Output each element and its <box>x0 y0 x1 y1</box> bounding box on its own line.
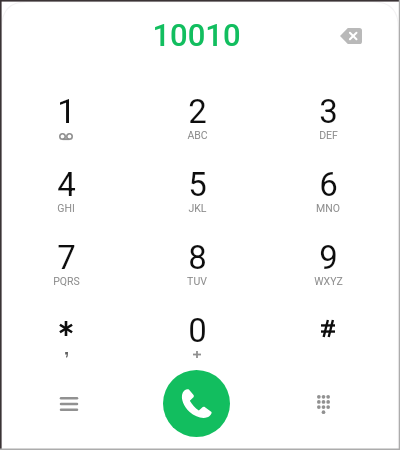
staticText: 7 <box>57 238 76 277</box>
staticText: 10010 <box>152 17 241 53</box>
staticText: GHI <box>57 202 75 214</box>
button[interactable]: Pound <box>273 296 383 366</box>
staticText: JKL <box>188 202 207 214</box>
staticText: DEF <box>319 129 338 141</box>
staticText: 0 <box>188 311 207 350</box>
button[interactable]: 2 <box>142 77 252 147</box>
button[interactable]: 8 <box>142 223 252 293</box>
staticText: 4 <box>57 165 76 204</box>
button[interactable]: Backspace <box>329 14 373 58</box>
button[interactable]: 6 <box>273 150 383 220</box>
button[interactable]: 7 <box>11 223 121 293</box>
button[interactable]: 4 <box>11 150 121 220</box>
button[interactable]: Call history <box>45 380 93 428</box>
staticText: WXYZ <box>314 275 343 287</box>
button[interactable]: 1 <box>11 77 121 147</box>
staticText: TUV <box>187 275 207 287</box>
staticText: 8 <box>188 238 207 277</box>
button[interactable]: 5 <box>142 150 252 220</box>
button[interactable]: Dialpad <box>299 380 347 428</box>
button[interactable]: Call <box>163 370 230 437</box>
button[interactable]: Star <box>11 296 121 366</box>
button[interactable]: 9 <box>273 223 383 293</box>
staticText: 6 <box>319 165 338 204</box>
staticText: 5 <box>188 165 207 204</box>
staticText: 1 <box>57 92 76 131</box>
staticText: PQRS <box>53 275 80 287</box>
button[interactable]: 0 <box>142 296 252 366</box>
staticText: MNO <box>316 202 340 214</box>
button[interactable]: 3 <box>273 77 383 147</box>
staticText: 3 <box>319 92 338 131</box>
staticText: 2 <box>188 92 207 131</box>
staticText: 9 <box>319 238 338 277</box>
staticText: ABC <box>187 129 208 141</box>
